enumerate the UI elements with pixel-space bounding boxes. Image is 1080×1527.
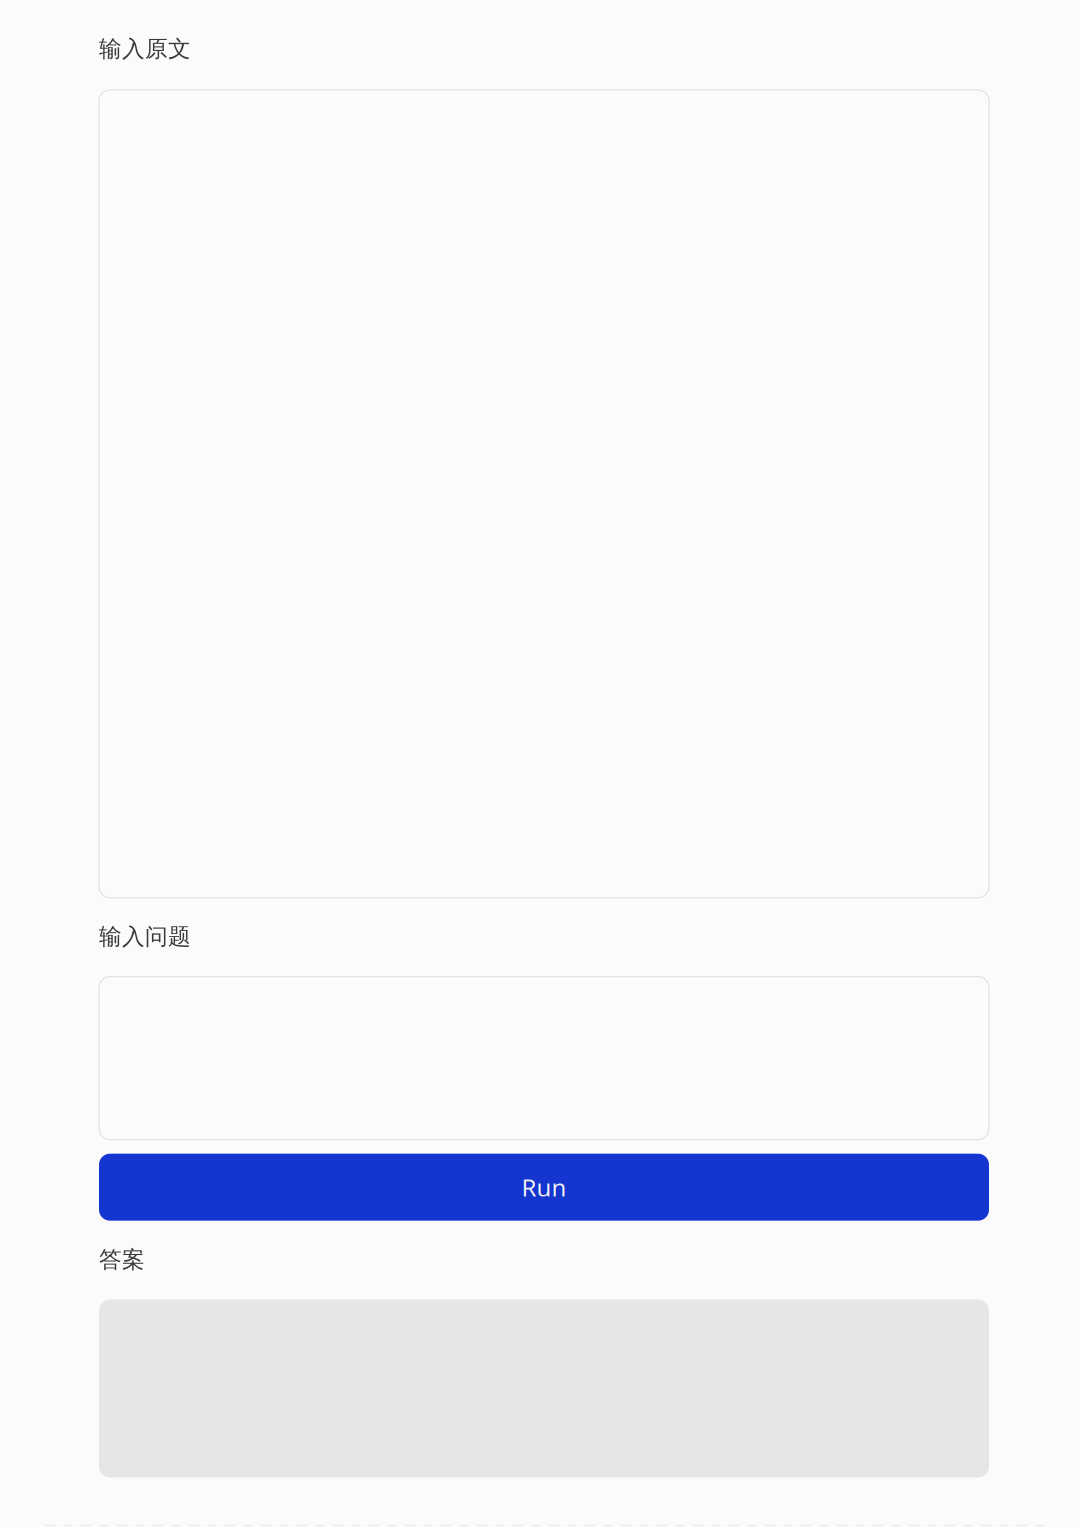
staticText: Run bbox=[521, 1171, 566, 1203]
staticText: 答案 bbox=[99, 1246, 145, 1273]
button[interactable]: Run bbox=[99, 1154, 989, 1221]
staticText: 输入问题 bbox=[99, 923, 191, 951]
staticText: 输入原文 bbox=[99, 35, 191, 63]
